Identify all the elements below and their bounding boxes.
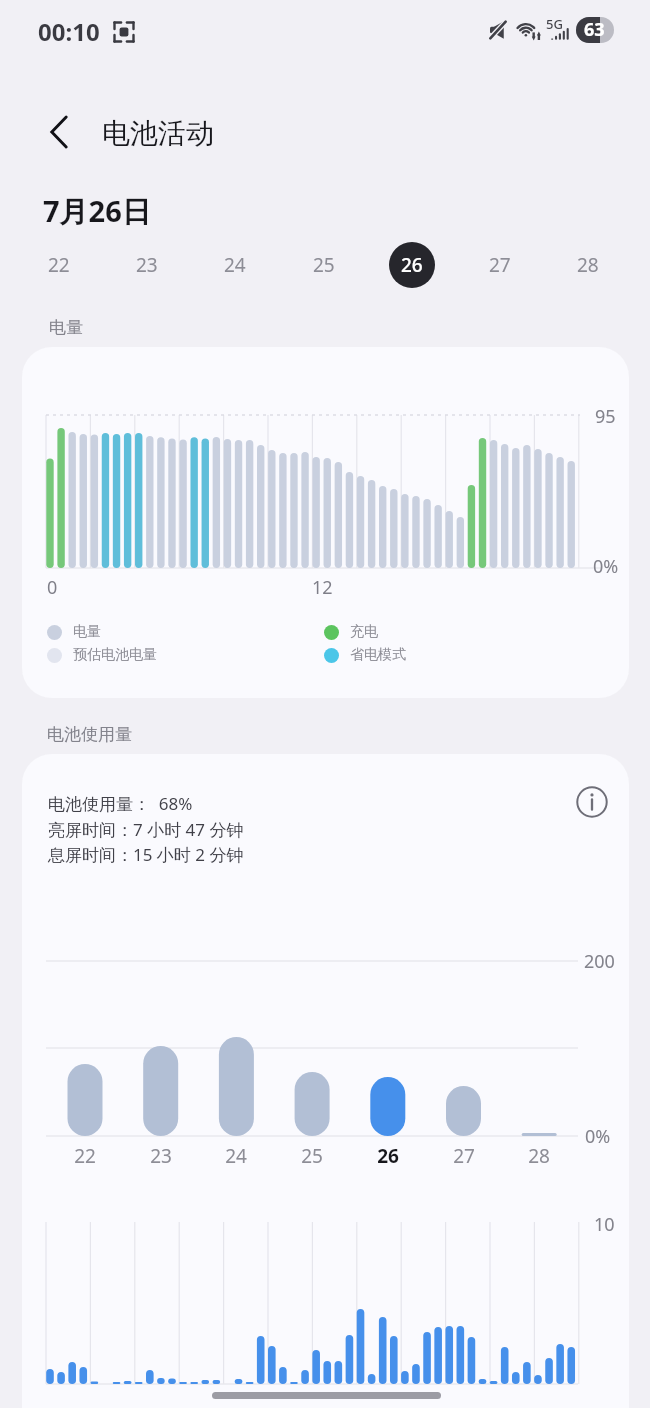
staticText: 电池使用量： 68% bbox=[48, 792, 193, 815]
staticText: 0% bbox=[585, 1124, 611, 1149]
staticText: 5G bbox=[546, 15, 563, 33]
staticText: 25 bbox=[301, 1143, 323, 1169]
staticText: 亮屏时间：7 小时 47 分钟 bbox=[48, 818, 244, 841]
staticText: 7月26日 bbox=[43, 191, 151, 231]
staticText: 23 bbox=[150, 1143, 172, 1169]
staticText: 省电模式 bbox=[350, 646, 406, 664]
staticText: 电池使用量 bbox=[47, 724, 132, 745]
staticText: 0 bbox=[47, 575, 58, 600]
staticText: 26 bbox=[377, 1143, 399, 1169]
staticText: 27 bbox=[489, 252, 511, 278]
staticText: 27 bbox=[453, 1143, 475, 1169]
staticText: 预估电池电量 bbox=[73, 646, 157, 664]
staticText: 24 bbox=[225, 1143, 247, 1169]
button[interactable]: 电池使用量： 68% bbox=[22, 754, 629, 1408]
staticText: 10 bbox=[594, 1212, 615, 1237]
staticText: 00:10 bbox=[38, 15, 100, 48]
button[interactable]: 24 bbox=[212, 242, 258, 288]
staticText: 充电 bbox=[350, 623, 378, 641]
staticText: 息屏时间：15 小时 2 分钟 bbox=[48, 843, 244, 866]
staticText: 22 bbox=[74, 1143, 96, 1169]
button[interactable]: Info bbox=[570, 780, 614, 824]
staticText: 28 bbox=[577, 252, 599, 278]
button[interactable]: 23 bbox=[124, 242, 170, 288]
staticText: 25 bbox=[313, 252, 335, 278]
staticText: 22 bbox=[48, 252, 70, 278]
staticText: 95 bbox=[595, 404, 616, 429]
staticText: 200 bbox=[584, 949, 615, 974]
staticText: 电池活动 bbox=[102, 116, 214, 151]
staticText: 24 bbox=[224, 252, 246, 278]
staticText: 电量 bbox=[49, 317, 83, 338]
button[interactable]: 28 bbox=[565, 242, 611, 288]
staticText: 电量 bbox=[73, 623, 101, 641]
staticText: 28 bbox=[528, 1143, 550, 1169]
staticText: 23 bbox=[136, 252, 158, 278]
staticText: 26 bbox=[401, 252, 423, 278]
button[interactable]: Back bbox=[35, 108, 83, 156]
button[interactable]: 25 bbox=[301, 242, 347, 288]
button[interactable]: 27 bbox=[477, 242, 523, 288]
button[interactable]: 0 bbox=[22, 347, 629, 698]
staticText: 12 bbox=[312, 575, 333, 600]
staticText: 63 bbox=[584, 17, 605, 42]
button[interactable]: 22 bbox=[36, 242, 82, 288]
button[interactable]: 26 bbox=[389, 242, 435, 288]
staticText: 0% bbox=[593, 554, 619, 579]
